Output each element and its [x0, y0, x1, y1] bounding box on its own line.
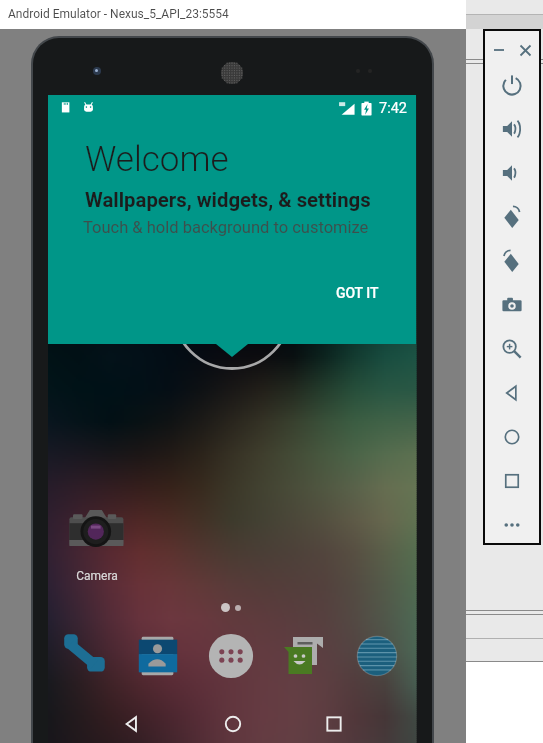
- staticText: Welcome: [85, 139, 229, 180]
- button[interactable]: Home: [182, 699, 283, 743]
- button[interactable]: Camera: [60, 501, 134, 587]
- button[interactable]: Volume up: [485, 107, 539, 151]
- button[interactable]: Back: [485, 371, 539, 415]
- staticText: Android Emulator - Nexus_5_API_23:5554: [8, 7, 229, 21]
- button[interactable]: Home: [485, 415, 539, 459]
- button[interactable]: Close: [512, 39, 539, 61]
- button[interactable]: Apps: [194, 622, 267, 690]
- button[interactable]: Take screenshot: [485, 283, 539, 327]
- button[interactable]: Rotate left: [485, 195, 539, 239]
- button[interactable]: Back: [81, 699, 182, 743]
- staticText: Wallpapers, widgets, & settings: [85, 188, 371, 212]
- staticText: 7:42: [379, 100, 407, 117]
- button[interactable]: Phone: [48, 622, 121, 690]
- button[interactable]: Minimize: [485, 39, 512, 61]
- staticText: Camera: [60, 569, 134, 583]
- button[interactable]: Rotate right: [485, 239, 539, 283]
- button[interactable]: Power: [485, 63, 539, 107]
- button[interactable]: GOT IT: [322, 273, 393, 313]
- button[interactable]: Zoom: [485, 327, 539, 371]
- button[interactable]: Overview: [485, 459, 539, 503]
- staticText: Touch & hold background to customize: [83, 218, 369, 237]
- staticText: GOT IT: [336, 285, 379, 301]
- button[interactable]: Volume down: [485, 151, 539, 195]
- button[interactable]: Contacts: [121, 622, 194, 690]
- button[interactable]: Browser: [340, 622, 413, 690]
- button[interactable]: Messaging: [267, 622, 340, 690]
- button[interactable]: More: [485, 503, 539, 547]
- button[interactable]: Recents: [283, 699, 384, 743]
